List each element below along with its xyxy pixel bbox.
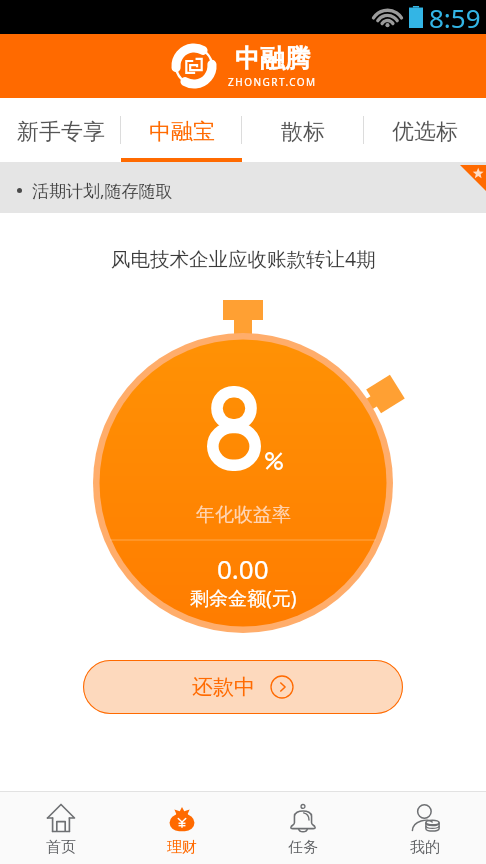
staticText: ZHONGRT.COM: [228, 75, 317, 89]
staticText: 还款中: [192, 674, 255, 700]
staticText: 年化收益率: [196, 503, 291, 527]
button[interactable]: 还款中: [83, 660, 403, 714]
staticText: 风电技术企业应收账款转让4期: [111, 245, 376, 272]
staticText: 中融腾: [235, 43, 310, 74]
staticText: 我的: [410, 838, 440, 857]
staticText: 8:59: [429, 0, 481, 34]
staticText: 新手专享: [17, 118, 105, 146]
button[interactable]: 我的: [364, 791, 486, 864]
button[interactable]: Featured: [460, 165, 486, 191]
staticText: 中融宝: [149, 118, 215, 146]
staticText: 任务: [288, 838, 318, 857]
staticText: 0.00: [217, 551, 269, 586]
staticText: 剩余金额(元): [190, 585, 297, 611]
staticText: 活期计划,随存随取: [32, 179, 173, 202]
button[interactable]: 新手专享: [0, 98, 121, 162]
other: ZHONGRT logo: [170, 42, 218, 90]
button[interactable]: 理财: [121, 791, 242, 864]
button[interactable]: 任务: [242, 791, 364, 864]
staticText: 散标: [281, 118, 325, 146]
button[interactable]: 优选标: [364, 98, 486, 162]
button[interactable]: 8% 年化收益率, 剩余金额 0.00 元: [78, 300, 408, 632]
button[interactable]: 活期计划,随存随取: [0, 162, 486, 213]
button[interactable]: 散标: [242, 98, 364, 162]
staticText: 优选标: [392, 118, 458, 146]
button[interactable]: 中融宝: [121, 98, 242, 162]
staticText: 首页: [46, 838, 76, 857]
staticText: 理财: [167, 838, 197, 857]
button[interactable]: 首页: [0, 791, 121, 864]
